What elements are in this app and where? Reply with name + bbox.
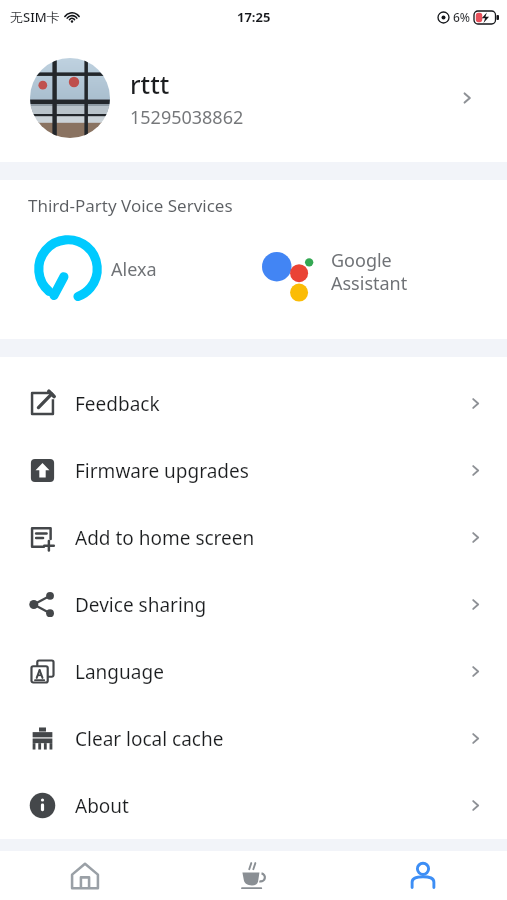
staticText: Firmware upgrades <box>75 458 249 484</box>
staticText: Alexa <box>111 257 157 282</box>
button[interactable]: Clear local cache <box>0 705 507 772</box>
staticText: Clear local cache <box>75 726 224 752</box>
staticText: About <box>75 793 129 819</box>
staticText: Feedback <box>75 391 160 417</box>
button[interactable]: Profile <box>338 851 507 900</box>
staticText: Add to home screen <box>75 525 255 551</box>
staticText: Google Assistant <box>331 248 408 295</box>
button[interactable]: Feedback <box>0 370 507 437</box>
staticText: Language <box>75 659 164 685</box>
staticText: Third-Party Voice Services <box>28 194 233 217</box>
staticText: 无SIM卡 <box>10 8 60 26</box>
staticText: 17:25 <box>237 8 271 26</box>
staticText: 15295038862 <box>130 105 244 130</box>
button[interactable]: Device sharing <box>0 571 507 638</box>
button[interactable]: Alexa <box>0 235 253 303</box>
button[interactable]: rttt <box>0 34 507 162</box>
button[interactable]: About <box>0 772 507 839</box>
button[interactable]: Add to home screen <box>0 504 507 571</box>
staticText: rttt <box>130 67 170 101</box>
staticText: 6% <box>453 9 471 25</box>
button[interactable]: Drinks <box>169 851 338 900</box>
staticText: Device sharing <box>75 592 207 618</box>
button[interactable]: Firmware upgrades <box>0 437 507 504</box>
button[interactable]: Home <box>0 851 169 900</box>
button[interactable]: Google Assistant <box>253 235 507 307</box>
button[interactable]: Language <box>0 638 507 705</box>
